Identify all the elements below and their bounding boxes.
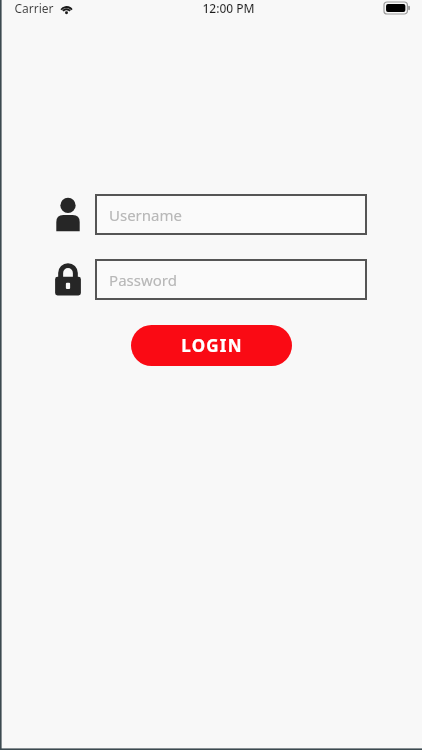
- other: Password: [53, 262, 83, 298]
- staticText: LOGIN: [181, 334, 243, 357]
- staticText: Username: [109, 205, 182, 225]
- staticText: 12:00 PM: [202, 0, 255, 16]
- button[interactable]: Password: [95, 259, 367, 300]
- other: Username: [53, 197, 83, 233]
- button[interactable]: Username: [95, 194, 367, 235]
- staticText: Password: [109, 270, 177, 290]
- button[interactable]: LOGIN: [131, 325, 292, 366]
- other: Battery: [384, 2, 410, 14]
- staticText: Carrier: [14, 0, 54, 16]
- other: Wi-Fi: [60, 3, 73, 14]
